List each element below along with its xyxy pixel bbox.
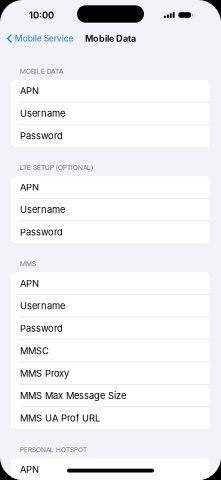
button[interactable]: Username (11, 102, 210, 124)
staticText: APN (20, 182, 39, 193)
button[interactable]: Username (11, 295, 210, 317)
staticText: APN (20, 464, 39, 475)
staticText: PERSONAL HOTSPOT (20, 446, 87, 454)
staticText: MMS (20, 260, 36, 268)
button[interactable]: APN (11, 80, 210, 102)
staticText: MMS Proxy (20, 368, 69, 379)
staticText: Password (20, 323, 63, 334)
button[interactable]: Password (11, 125, 210, 147)
staticText: 10:00 (29, 9, 54, 21)
button[interactable]: Username (11, 199, 210, 221)
button[interactable]: MMS UA Prof URL (11, 407, 210, 429)
staticText: Username (20, 204, 65, 215)
staticText: APN (20, 85, 39, 97)
button[interactable]: MMS Proxy (11, 362, 210, 384)
staticText: Password (20, 226, 63, 238)
button[interactable]: Password (11, 317, 210, 339)
staticText: Password (20, 130, 63, 141)
staticText: Username (20, 108, 65, 119)
staticText: Username (20, 300, 65, 311)
staticText: APN (20, 278, 39, 289)
button[interactable]: APN (11, 272, 210, 294)
staticText: LTE SETUP (OPTIONAL) (20, 163, 93, 172)
button[interactable]: Password (11, 221, 210, 243)
button[interactable]: MMSC (11, 340, 210, 362)
staticText: MMS Max Message Size (20, 390, 126, 401)
staticText: MMSC (20, 345, 49, 356)
staticText: MOBILE DATA (20, 67, 63, 75)
button[interactable]: MMS Max Message Size (11, 385, 210, 407)
button[interactable]: APN (11, 176, 210, 198)
staticText: Mobile Data (85, 33, 136, 44)
staticText: Mobile Service (15, 33, 74, 44)
button[interactable]: Mobile Service (0, 30, 78, 47)
staticText: MMS UA Prof URL (20, 412, 100, 424)
button[interactable]: APN (11, 458, 210, 480)
